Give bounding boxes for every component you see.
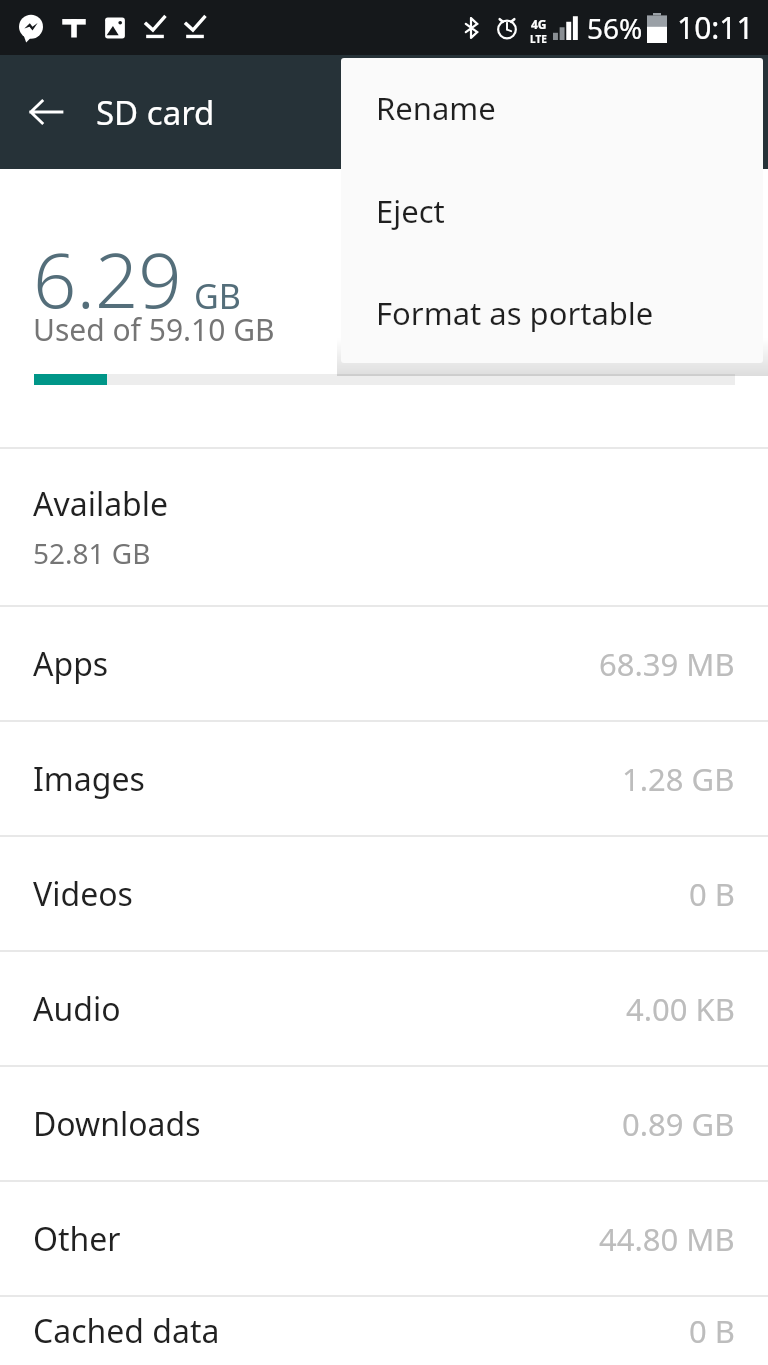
button[interactable]: Rename <box>341 58 763 158</box>
staticText: 52.81 GB <box>33 534 151 572</box>
button[interactable]: Apps <box>0 607 768 720</box>
button[interactable]: Images <box>0 722 768 835</box>
button[interactable]: Eject <box>341 161 763 261</box>
button[interactable]: Videos <box>0 837 768 950</box>
staticText: 68.39 MB <box>599 643 735 685</box>
staticText: 4G <box>531 16 547 32</box>
staticText: Other <box>33 1217 121 1261</box>
staticText: Used of 59.10 GB <box>33 309 275 350</box>
button[interactable]: Available <box>0 449 768 605</box>
staticText: 6.29 <box>33 227 182 331</box>
staticText: 56% <box>587 9 643 47</box>
staticText: Images <box>33 757 145 801</box>
staticText: GB <box>194 273 241 319</box>
staticText: 1.28 GB <box>622 758 735 800</box>
staticText: Format as portable <box>376 292 654 334</box>
button[interactable]: Other <box>0 1182 768 1295</box>
staticText: 0 B <box>689 873 735 915</box>
staticText: Apps <box>33 642 109 686</box>
staticText: 4.00 KB <box>626 988 735 1030</box>
staticText: Downloads <box>33 1102 201 1146</box>
staticText: LTE <box>530 32 547 43</box>
button[interactable]: Cached data <box>0 1297 768 1365</box>
staticText: Available <box>33 482 169 526</box>
staticText: Videos <box>33 872 133 916</box>
button[interactable]: Back <box>10 76 82 148</box>
staticText: SD card <box>96 90 215 135</box>
staticText: Cached data <box>33 1309 220 1353</box>
staticText: Eject <box>376 190 445 232</box>
staticText: 10:11 <box>677 7 754 48</box>
staticText: 0.89 GB <box>622 1103 735 1145</box>
button[interactable]: Downloads <box>0 1067 768 1180</box>
staticText: 0 B <box>689 1310 735 1352</box>
staticText: Rename <box>376 87 496 129</box>
staticText: 44.80 MB <box>599 1218 735 1260</box>
staticText: Audio <box>33 987 121 1031</box>
button[interactable]: Format as portable <box>341 263 763 363</box>
button[interactable]: Audio <box>0 952 768 1065</box>
